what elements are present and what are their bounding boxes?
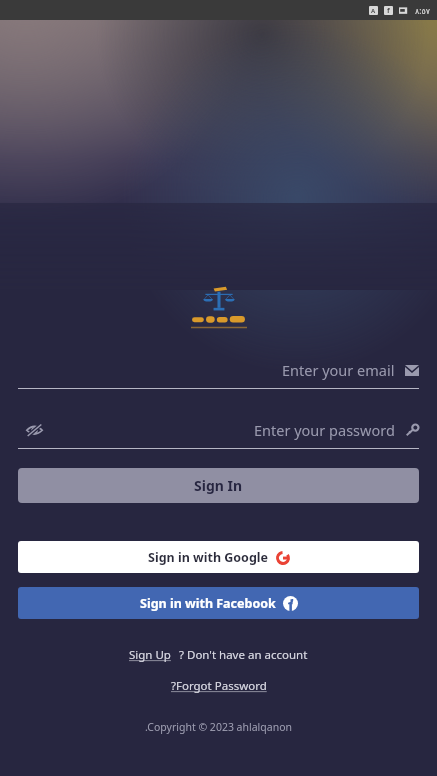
staticText: Sign In: [194, 476, 243, 495]
other: Password: [405, 424, 419, 436]
staticText: ?Forgot Password: [171, 678, 267, 694]
staticText: f: [387, 6, 390, 15]
staticText: .Copyright © 2023 ahlalqanon: [145, 720, 292, 734]
staticText: Sign in with Facebook: [140, 595, 276, 612]
button[interactable]: Email: [18, 355, 419, 389]
staticText: ٨:٥٧: [415, 5, 431, 16]
staticText: Sign in with Google: [148, 549, 269, 566]
staticText: Enter your password: [254, 420, 395, 440]
staticText: Enter your email: [282, 360, 395, 380]
staticText: Sign Up: [129, 647, 171, 663]
button[interactable]: ?Forgot Password: [171, 678, 267, 694]
button[interactable]: Toggle password visibility: [22, 418, 46, 442]
button[interactable]: Sign Up: [129, 647, 171, 663]
staticText: A: [371, 7, 376, 15]
button[interactable]: Sign in with Facebook: [18, 587, 419, 619]
other: Email: [405, 365, 419, 376]
button[interactable]: Sign In: [18, 468, 419, 503]
staticText: ? Don't have an account: [179, 647, 308, 663]
button[interactable]: Password: [18, 415, 419, 449]
button[interactable]: Sign in with Google: [18, 541, 419, 573]
